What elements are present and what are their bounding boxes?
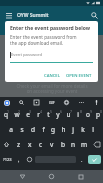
button[interactable]: Recent apps (74, 170, 87, 183)
button[interactable]: Stickers (32, 98, 41, 107)
button[interactable]: w (11, 107, 22, 122)
staticText: . (81, 156, 83, 163)
button[interactable]: l (88, 122, 98, 137)
staticText: q (4, 110, 8, 119)
staticText: l (92, 125, 94, 134)
button[interactable]: GIF (47, 98, 56, 107)
staticText: g (51, 125, 55, 134)
button[interactable]: z (13, 137, 24, 152)
button[interactable]: m (79, 137, 90, 152)
button[interactable]: k (78, 122, 88, 137)
button[interactable]: o (83, 107, 93, 122)
button[interactable]: y (53, 107, 63, 122)
staticText: 0 (100, 109, 103, 114)
staticText: e (26, 110, 30, 119)
staticText: 1 (7, 109, 10, 114)
button[interactable]: b (57, 137, 68, 152)
button[interactable]: CANCEL (42, 71, 62, 80)
staticText: GIF (49, 100, 55, 105)
button[interactable]: f (38, 122, 48, 137)
button[interactable]: Menu (3, 10, 14, 21)
button[interactable]: , (14, 152, 24, 167)
button[interactable]: t (43, 107, 53, 122)
button[interactable]: . (77, 152, 86, 167)
staticText: j (72, 125, 74, 134)
staticText: n (71, 140, 76, 149)
button[interactable]: Enter (88, 155, 101, 164)
button[interactable]: i (73, 107, 83, 122)
button[interactable]: x (24, 137, 35, 152)
staticText: Check your email for more details on acc… (16, 83, 88, 95)
staticText: b (61, 140, 65, 149)
staticText: c (39, 140, 43, 149)
button[interactable]: Home (45, 170, 58, 183)
staticText: , (18, 156, 20, 163)
button[interactable]: n (68, 137, 79, 152)
button[interactable]: More options (77, 98, 86, 107)
staticText: x (28, 140, 32, 149)
button[interactable]: s (16, 122, 27, 137)
staticText: o (86, 110, 90, 119)
button[interactable]: p (93, 107, 103, 122)
staticText: w (14, 110, 20, 119)
button[interactable]: Back (16, 170, 29, 183)
button[interactable]: Search (88, 9, 100, 21)
button[interactable]: Settings (62, 98, 71, 107)
button[interactable]: h (58, 122, 68, 137)
staticText: r (37, 110, 40, 119)
button[interactable]: u (63, 107, 73, 122)
button[interactable]: c (35, 137, 46, 152)
staticText: v (50, 140, 54, 149)
button[interactable]: a (5, 122, 16, 137)
staticText: u (66, 110, 71, 119)
staticText: k (81, 125, 85, 134)
staticText: 8 (80, 109, 83, 114)
staticText: p (96, 110, 100, 119)
staticText: Enter the event password below (10, 25, 91, 32)
staticText: Event password (11, 52, 42, 58)
button[interactable]: d (27, 122, 38, 137)
button[interactable]: q (0, 107, 11, 122)
staticText: OYW Summit (17, 12, 49, 19)
button[interactable]: g (48, 122, 58, 137)
staticText: CANCEL (44, 73, 60, 78)
staticText: OPEN EVENT (66, 73, 92, 78)
button[interactable]: Backspace (90, 137, 103, 152)
staticText: 4 (40, 109, 43, 114)
button[interactable]: Google (2, 98, 11, 107)
staticText: 7 (70, 109, 73, 114)
button[interactable]: Emoji (24, 152, 34, 167)
staticText: 5 (50, 109, 53, 114)
staticText: d (31, 125, 35, 134)
staticText: Enter the event password from the app do… (10, 34, 77, 46)
button[interactable]: ?123 (0, 152, 14, 167)
button[interactable]: Shift (0, 137, 13, 152)
staticText: t (47, 110, 50, 119)
staticText: i (77, 110, 79, 119)
staticText: a (9, 125, 13, 134)
staticText: s (20, 125, 24, 134)
staticText: f (42, 125, 45, 134)
button[interactable]: v (46, 137, 57, 152)
button[interactable]: OPEN EVENT (64, 71, 94, 80)
staticText: 6 (60, 109, 63, 114)
staticText: 3 (29, 109, 32, 114)
staticText: z (17, 140, 21, 149)
button[interactable]: j (68, 122, 78, 137)
staticText: 2 (18, 109, 21, 114)
button[interactable]: e (22, 107, 33, 122)
button[interactable]: Voice input (92, 98, 101, 107)
staticText: h (61, 125, 66, 134)
staticText: ?123 (3, 157, 12, 162)
staticText: 9 (90, 109, 93, 114)
staticText: m (81, 140, 88, 149)
staticText: y (56, 110, 60, 119)
button[interactable]: r (33, 107, 43, 122)
button[interactable]: Search (17, 98, 26, 107)
